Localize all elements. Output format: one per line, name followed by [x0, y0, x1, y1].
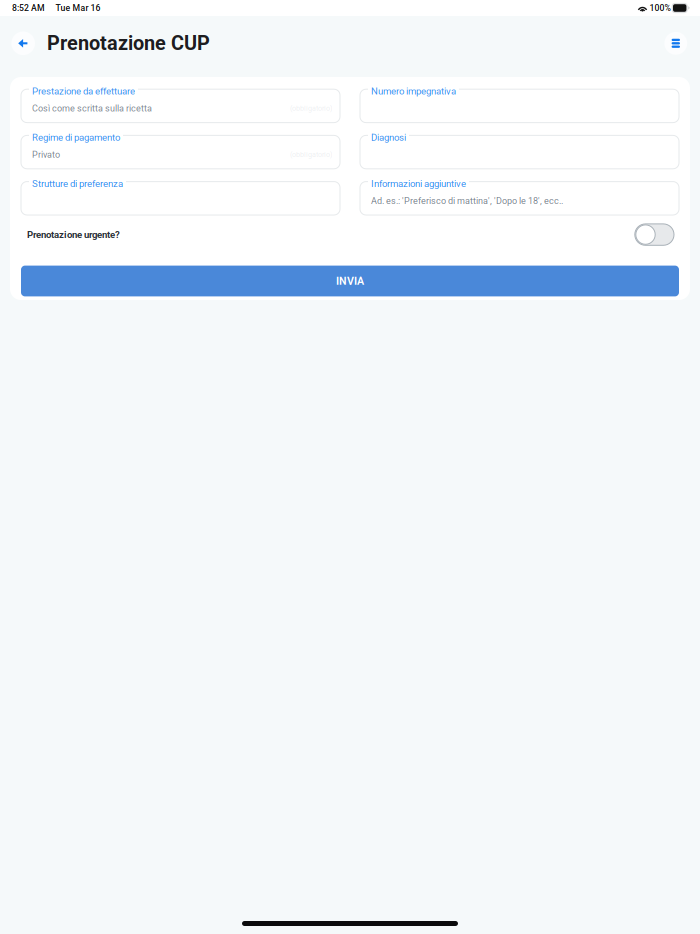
button[interactable]: INVIA	[21, 266, 679, 296]
staticText: INVIA	[336, 275, 364, 287]
button[interactable]: Prenotazione urgente?	[10, 215, 690, 254]
staticText: Prenotazione CUP	[47, 32, 210, 55]
staticText: Privato	[32, 149, 60, 160]
staticText: Numero impegnativa	[371, 86, 456, 97]
staticText: Informazioni aggiuntive	[371, 178, 466, 189]
button[interactable]: Back	[11, 31, 35, 55]
staticText: Tue Mar 16	[55, 3, 100, 13]
staticText: Strutture di preferenza	[32, 178, 123, 189]
staticText: Così come scritta sulla ricetta	[32, 103, 152, 114]
staticText: Prenotazione urgente?	[27, 229, 120, 240]
staticText: 100%	[649, 3, 670, 13]
staticText: Diagnosi	[371, 132, 406, 143]
staticText: (obbligatorio)	[290, 104, 333, 113]
button[interactable]: Menu	[664, 32, 687, 55]
staticText: Prestazione da effettuare	[32, 86, 135, 97]
staticText: Ad. es.: 'Preferisco di mattina', 'Dopo …	[371, 195, 563, 206]
staticText: Regime di pagamento	[32, 132, 120, 143]
staticText: 8:52 AM	[12, 3, 45, 13]
staticText: (obbligatorio)	[290, 150, 333, 159]
